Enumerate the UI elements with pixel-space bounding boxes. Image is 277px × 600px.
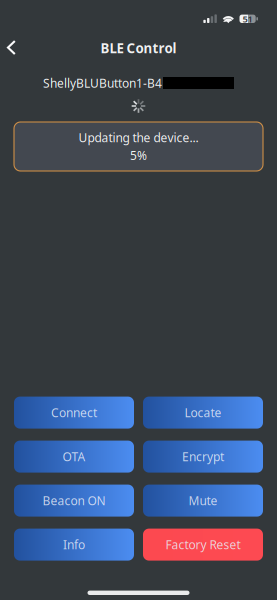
staticText: Locate xyxy=(184,405,221,420)
staticText: Updating the device... xyxy=(78,130,198,145)
staticText: Factory Reset xyxy=(165,537,240,552)
button[interactable]: Factory Reset xyxy=(143,529,263,561)
button[interactable]: Info xyxy=(14,529,134,561)
staticText: 51 xyxy=(243,13,253,25)
staticText: Info xyxy=(63,537,85,552)
staticText: Beacon ON xyxy=(42,493,105,508)
staticText: ShellyBLUButton1-B4 xyxy=(43,75,162,91)
button[interactable]: Back xyxy=(0,26,32,64)
staticText: Mute xyxy=(188,493,217,508)
staticText: OTA xyxy=(62,449,85,464)
button[interactable]: Encrypt xyxy=(143,441,263,473)
staticText: 5% xyxy=(130,147,147,163)
button[interactable]: OTA xyxy=(14,441,134,473)
staticText: Connect xyxy=(51,405,97,420)
staticText: Encrypt xyxy=(182,449,224,464)
button[interactable]: Mute xyxy=(143,485,263,517)
button[interactable]: Connect xyxy=(14,397,134,429)
button[interactable]: Beacon ON xyxy=(14,485,134,517)
staticText: BLE Control xyxy=(100,39,176,57)
button[interactable]: Locate xyxy=(143,397,263,429)
